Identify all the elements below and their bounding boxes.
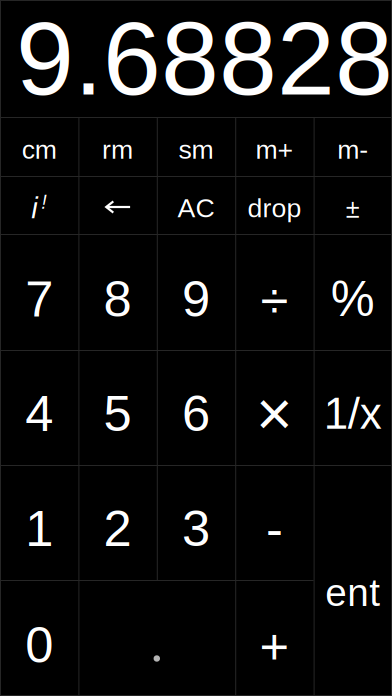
staticText: + xyxy=(259,618,289,674)
staticText: drop xyxy=(247,193,301,223)
staticText: i xyxy=(31,192,38,224)
button[interactable]: Decimal point xyxy=(78,580,235,696)
button[interactable]: 1 xyxy=(0,465,78,580)
button[interactable]: m+ xyxy=(235,117,314,176)
staticText: - xyxy=(266,500,283,557)
button[interactable]: AC xyxy=(157,176,235,234)
button[interactable]: 0 xyxy=(0,580,78,696)
staticText: 9 xyxy=(182,271,210,327)
staticText: ÷ xyxy=(260,272,288,328)
staticText: cm xyxy=(22,135,57,164)
staticText: 5 xyxy=(104,385,132,442)
staticText: ent xyxy=(325,571,380,614)
button[interactable]: ent xyxy=(314,465,392,696)
staticText: 1 xyxy=(25,500,53,557)
button[interactable]: 5 xyxy=(78,350,157,465)
staticText: 8 xyxy=(104,271,132,327)
button[interactable]: ÷ xyxy=(235,234,314,350)
staticText: 6 xyxy=(182,385,210,442)
button[interactable]: m- xyxy=(314,117,392,176)
staticText: 7 xyxy=(25,271,53,327)
button[interactable]: 1/x xyxy=(314,350,392,465)
button[interactable]: 9 xyxy=(157,234,235,350)
staticText: 9.68828 xyxy=(16,0,392,117)
staticText: 1/x xyxy=(324,389,382,438)
button[interactable]: 8 xyxy=(78,234,157,350)
button[interactable]: cm xyxy=(0,117,78,176)
button[interactable]: ± xyxy=(314,176,392,234)
button[interactable]: drop xyxy=(235,176,314,234)
staticText: AC xyxy=(177,193,214,223)
staticText: ! xyxy=(41,191,47,213)
staticText: m- xyxy=(337,135,368,164)
button[interactable]: × xyxy=(235,350,314,465)
button[interactable]: rm xyxy=(78,117,157,176)
button[interactable]: + xyxy=(235,580,314,696)
button[interactable]: % xyxy=(314,234,392,350)
button[interactable]: Factorial xyxy=(0,176,78,234)
staticText: 0 xyxy=(25,617,53,673)
button[interactable]: 6 xyxy=(157,350,235,465)
staticText: ± xyxy=(346,195,360,223)
button[interactable]: Backspace xyxy=(78,176,157,234)
button[interactable]: 4 xyxy=(0,350,78,465)
staticText: sm xyxy=(178,135,213,164)
button[interactable]: 3 xyxy=(157,465,235,580)
staticText: % xyxy=(331,271,375,326)
button[interactable]: - xyxy=(235,465,314,580)
button[interactable]: sm xyxy=(157,117,235,176)
button[interactable]: 7 xyxy=(0,234,78,350)
button[interactable]: 2 xyxy=(78,465,157,580)
staticText: 2 xyxy=(104,500,132,557)
staticText: 4 xyxy=(25,385,53,442)
staticText: rm xyxy=(102,135,133,164)
staticText: 3 xyxy=(182,500,210,557)
staticText: m+ xyxy=(255,135,293,164)
staticText: × xyxy=(256,378,293,448)
